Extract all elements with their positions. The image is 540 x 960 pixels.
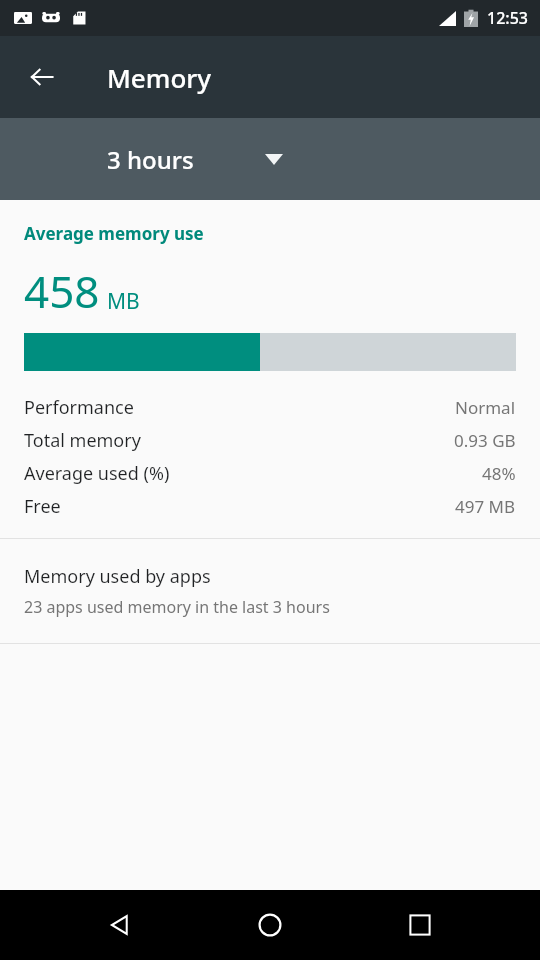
button[interactable]: Home	[246, 901, 294, 949]
button[interactable]: Recent apps	[396, 901, 444, 949]
button[interactable]: Total memory	[0, 424, 540, 457]
staticText: Average memory use	[24, 222, 204, 245]
staticText: MB	[107, 287, 140, 316]
button[interactable]: Free	[0, 490, 540, 523]
staticText: 458	[24, 261, 100, 321]
staticText: 3 hours	[107, 143, 194, 176]
staticText: Normal	[455, 396, 516, 419]
staticText: 0.93 GB	[454, 429, 516, 452]
staticText: Memory	[107, 60, 212, 95]
staticText: Performance	[24, 395, 134, 420]
button[interactable]: Average used (%)	[0, 457, 540, 490]
staticText: Total memory	[24, 428, 141, 453]
button[interactable]: Back	[18, 53, 66, 101]
staticText: 23 apps used memory in the last 3 hours	[24, 596, 330, 618]
staticText: 12:53	[487, 7, 528, 29]
staticText: 48%	[482, 462, 516, 485]
button[interactable]: 3 hours	[0, 118, 540, 200]
staticText: Free	[24, 494, 61, 519]
button[interactable]: Memory used by apps	[0, 539, 540, 643]
staticText: Memory used by apps	[24, 564, 211, 589]
button[interactable]: Performance	[0, 391, 540, 424]
staticText: 497 MB	[455, 495, 516, 518]
button[interactable]: Back	[96, 901, 144, 949]
staticText: Average used (%)	[24, 461, 170, 486]
